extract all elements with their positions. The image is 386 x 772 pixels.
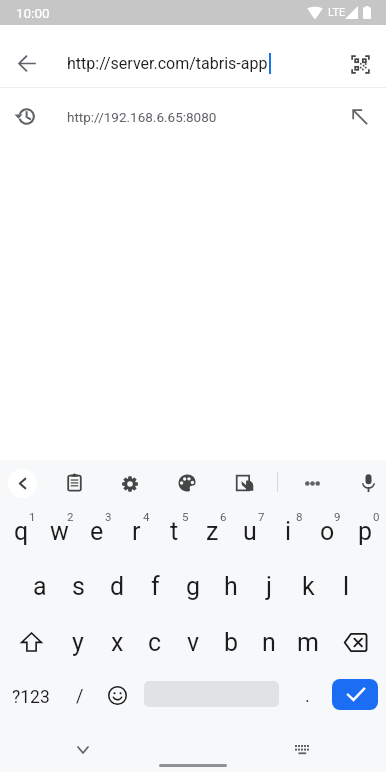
staticText: 7 (258, 510, 265, 523)
button[interactable]: f (136, 558, 174, 608)
staticText: n (262, 628, 276, 657)
button[interactable]: Switch keyboard (277, 729, 327, 769)
staticText: ?123 (12, 687, 50, 708)
button[interactable]: n (250, 615, 288, 665)
button[interactable]: a (21, 558, 59, 608)
button[interactable]: k (288, 558, 326, 608)
staticText: g (186, 572, 201, 601)
staticText: j (266, 572, 272, 601)
button[interactable]: Enter (332, 679, 378, 710)
staticText: 5 (182, 510, 189, 523)
staticText: u (243, 517, 257, 546)
button[interactable]: l (327, 558, 365, 608)
button[interactable]: Scan QR code (333, 33, 386, 95)
staticText: x (111, 628, 124, 657)
staticText: 3 (105, 510, 112, 523)
staticText: v (187, 628, 200, 657)
button[interactable]: y (59, 615, 97, 665)
button[interactable]: Clipboard (53, 461, 95, 503)
staticText: / (76, 685, 84, 706)
staticText: h (224, 572, 238, 601)
staticText: o (320, 517, 335, 546)
staticText: q (14, 517, 29, 546)
button[interactable]: e (78, 505, 116, 553)
button[interactable]: p (346, 505, 384, 553)
staticText: y (72, 628, 84, 657)
button[interactable]: g (174, 558, 212, 608)
staticText: 4 (143, 510, 150, 523)
button[interactable]: x (97, 615, 135, 665)
button[interactable]: r (117, 505, 155, 553)
button[interactable]: Settings (109, 463, 151, 505)
button[interactable]: w (40, 505, 78, 553)
button[interactable]: z (193, 505, 231, 553)
staticText: l (343, 572, 350, 601)
staticText: 10:00 (16, 5, 50, 21)
staticText: z (206, 517, 219, 546)
button[interactable]: t (155, 505, 193, 553)
staticText: t (170, 517, 179, 546)
button[interactable]: j (250, 558, 288, 608)
staticText: a (33, 572, 47, 601)
button[interactable]: Themes (166, 462, 208, 504)
button[interactable]: d (97, 558, 135, 608)
staticText: 2 (67, 510, 74, 523)
staticText: b (224, 628, 239, 657)
staticText: e (90, 517, 104, 546)
staticText: 9 (334, 510, 341, 523)
button[interactable]: Emoji (97, 672, 137, 718)
button[interactable]: / (62, 672, 97, 718)
button[interactable]: Back (1, 462, 43, 504)
button[interactable]: Voice input (347, 462, 386, 504)
button[interactable]: Shift (2, 617, 60, 667)
button[interactable]: h (212, 558, 250, 608)
staticText: s (72, 572, 85, 601)
staticText: r (132, 517, 141, 546)
button[interactable]: b (212, 615, 250, 665)
button[interactable]: One handed mode (224, 462, 266, 504)
staticText: http://192.168.6.65:8080 (67, 109, 217, 125)
button[interactable]: http://192.168.6.65:8080 (0, 88, 386, 145)
button[interactable]: o (308, 505, 346, 553)
button[interactable]: Insert suggestion (334, 88, 384, 145)
staticText: 0 (373, 510, 380, 523)
staticText: d (110, 572, 125, 601)
staticText: p (358, 517, 373, 546)
button[interactable]: Backspace (326, 617, 384, 667)
staticText: w (50, 517, 69, 546)
staticText: f (151, 572, 160, 601)
staticText: http://server.com/tabris-app (67, 54, 268, 73)
staticText: . (305, 685, 310, 706)
button[interactable]: i (269, 505, 307, 553)
button[interactable]: u (231, 505, 269, 553)
staticText: 6 (220, 510, 227, 523)
button[interactable]: v (174, 615, 212, 665)
staticText: 1 (29, 510, 36, 523)
staticText: c (148, 628, 162, 657)
button[interactable]: q (2, 505, 40, 553)
button[interactable]: More options (291, 462, 333, 504)
staticText: i (285, 517, 292, 546)
staticText: k (302, 572, 315, 601)
button[interactable]: . (287, 672, 327, 718)
staticText: 8 (296, 510, 303, 523)
button[interactable]: s (59, 558, 97, 608)
button[interactable]: Back (0, 32, 54, 94)
button[interactable]: c (136, 615, 174, 665)
button[interactable]: Hide keyboard (58, 730, 108, 770)
staticText: LTE (328, 6, 346, 19)
button[interactable]: ?123 (0, 674, 62, 720)
button[interactable]: m (288, 615, 326, 665)
staticText: m (297, 628, 319, 657)
